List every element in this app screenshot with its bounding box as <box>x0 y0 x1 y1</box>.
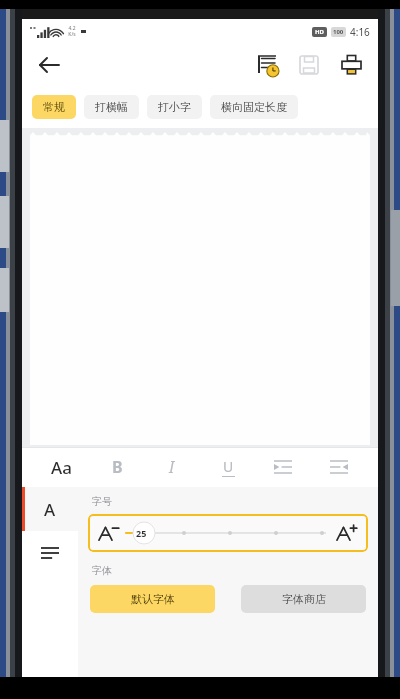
staticText: B <box>112 456 123 478</box>
button[interactable]: History <box>250 48 284 82</box>
button[interactable]: Decrease indent <box>317 448 361 486</box>
button[interactable]: Font size Aa <box>39 448 83 486</box>
button[interactable]: Bold <box>95 448 139 486</box>
staticText: Aa <box>51 456 72 479</box>
button[interactable]: 常规 <box>32 95 76 119</box>
button[interactable]: 横向固定长度 <box>210 95 298 119</box>
staticText: 打横幅 <box>95 100 128 114</box>
staticText: 默认字体 <box>131 592 175 606</box>
staticText: 100 <box>333 28 344 36</box>
staticText: A <box>44 498 56 521</box>
button[interactable]: Back <box>32 48 66 82</box>
staticText: 4.2 K/s <box>68 25 76 38</box>
staticText: I <box>169 456 175 478</box>
button[interactable]: Font size slider <box>88 514 368 552</box>
staticText: HD <box>315 28 324 36</box>
staticText: 常规 <box>43 100 65 114</box>
button[interactable]: Text style <box>22 487 78 531</box>
staticText: 4:16 <box>350 25 370 39</box>
staticText: 字号 <box>92 495 112 508</box>
button[interactable]: Print <box>334 48 368 82</box>
staticText: 字体 <box>92 564 112 577</box>
button[interactable]: 默认字体 <box>90 585 215 613</box>
button[interactable]: Save <box>292 48 326 82</box>
button[interactable]: Underline <box>206 448 250 486</box>
staticText: 横向固定长度 <box>221 100 287 114</box>
button[interactable]: Increase indent <box>261 448 305 486</box>
staticText: U <box>223 457 234 476</box>
button[interactable]: 打横幅 <box>84 95 139 119</box>
staticText: 25 <box>136 527 147 539</box>
staticText: 打小字 <box>158 100 191 114</box>
button[interactable]: Italic <box>150 448 194 486</box>
button[interactable]: 打小字 <box>147 95 202 119</box>
staticText: 字体商店 <box>282 592 326 606</box>
button[interactable]: Alignment <box>22 531 78 575</box>
button[interactable]: 字体商店 <box>241 585 366 613</box>
